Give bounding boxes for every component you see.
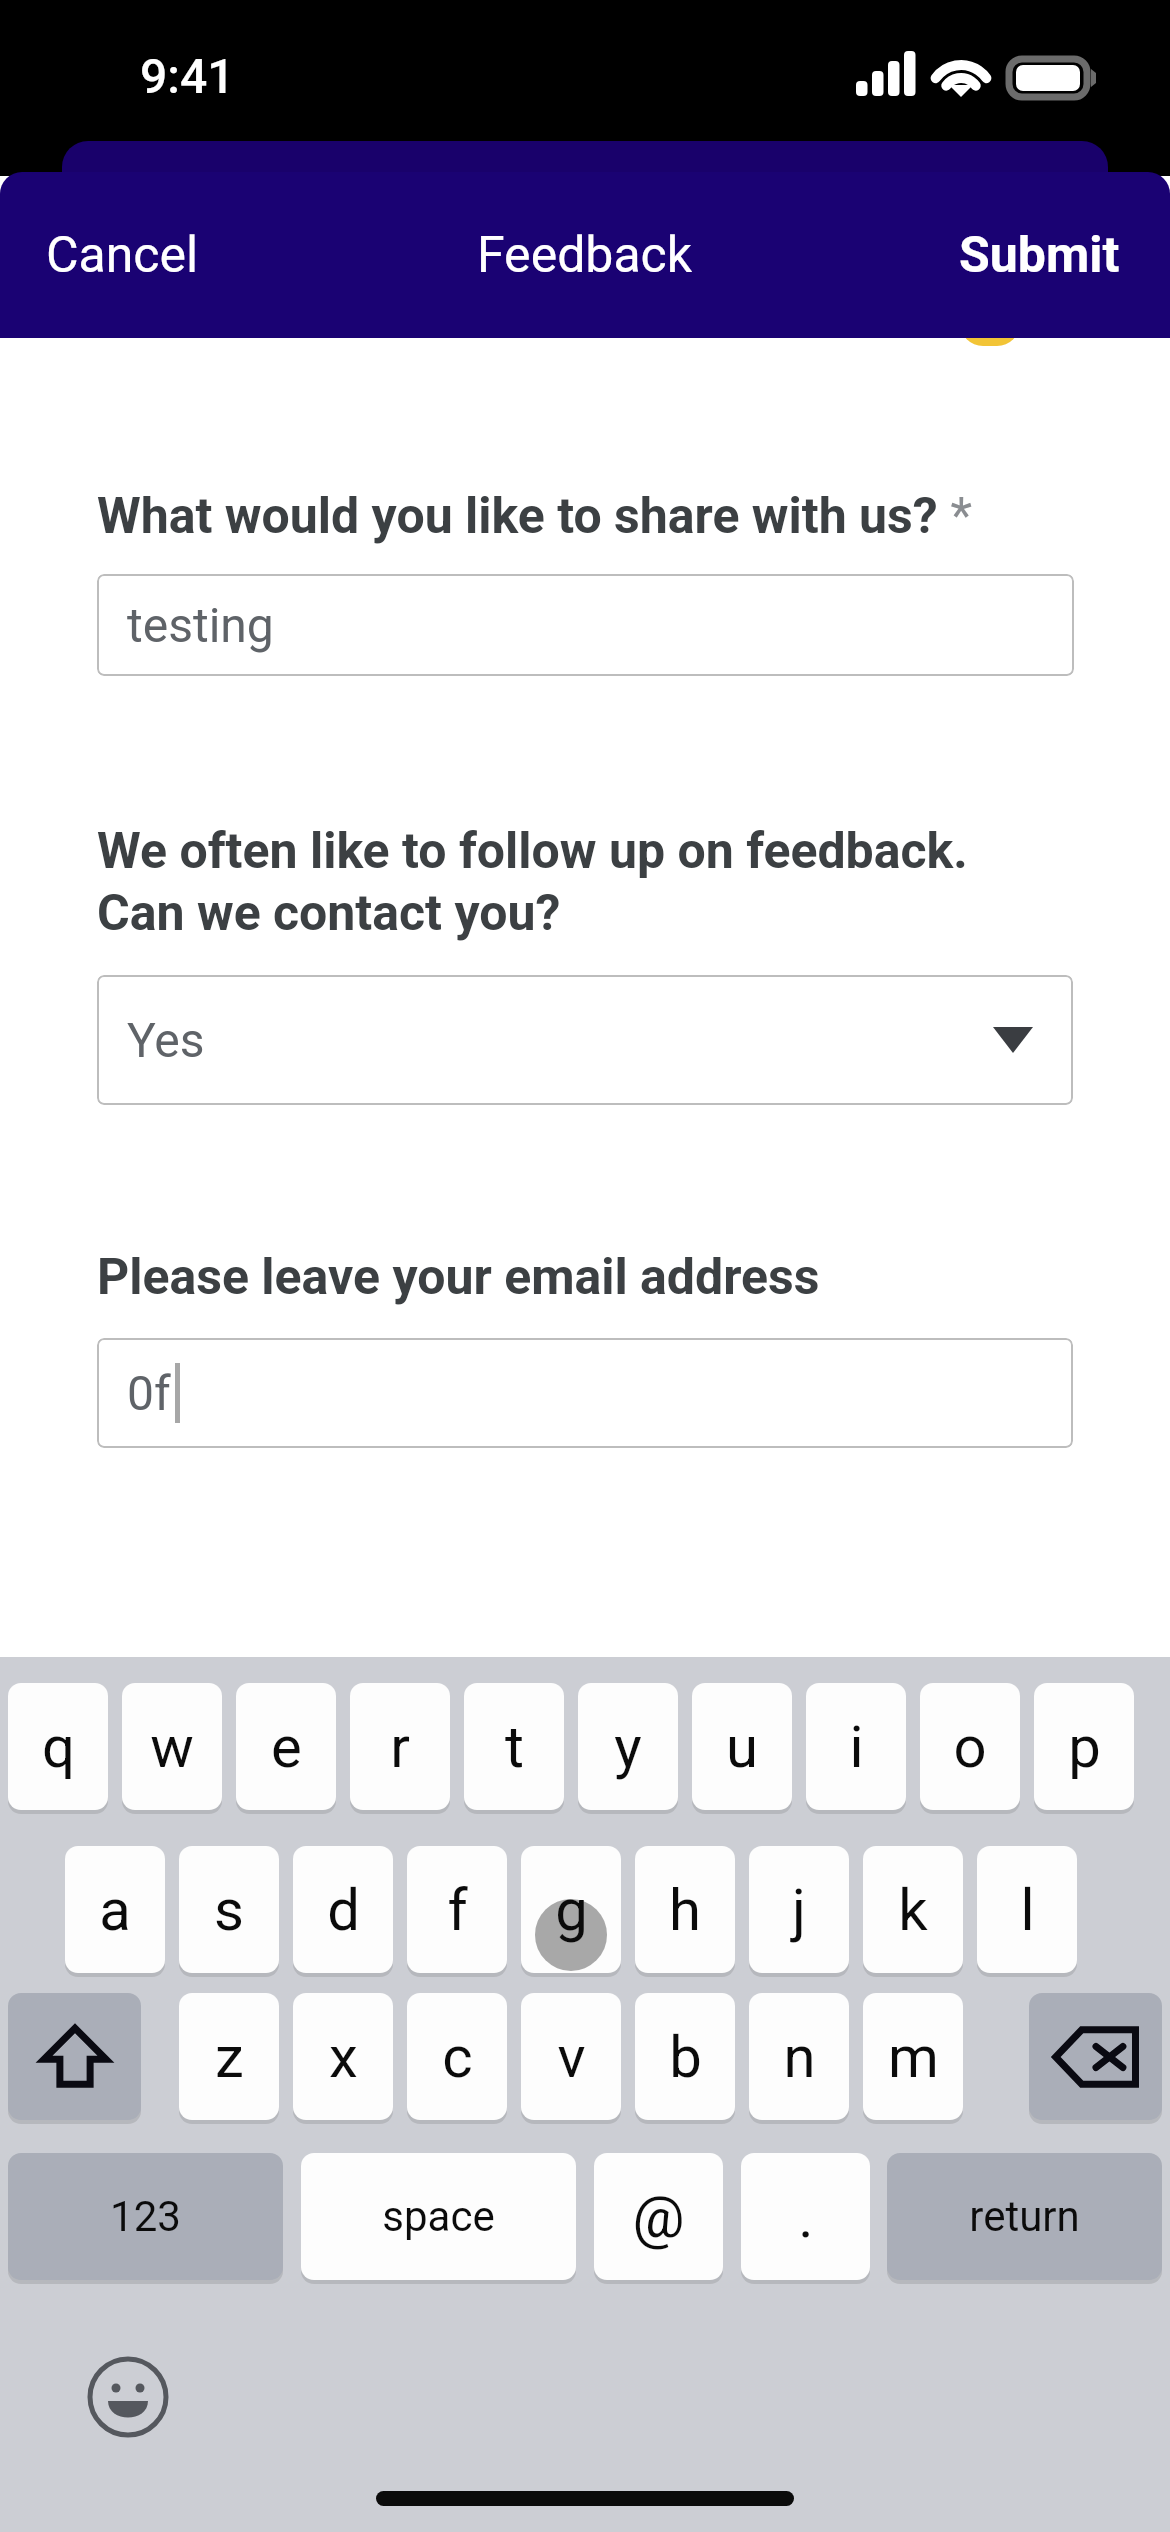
staticText: b bbox=[669, 2023, 702, 2091]
staticText: j bbox=[792, 1876, 806, 1944]
staticText: Submit bbox=[959, 226, 1120, 285]
button[interactable]: s bbox=[179, 1846, 279, 1973]
button[interactable]: o bbox=[920, 1683, 1020, 1810]
button[interactable]: 123 bbox=[8, 2153, 283, 2280]
button[interactable]: j bbox=[749, 1846, 849, 1973]
button[interactable]: Cancel bbox=[0, 204, 229, 307]
button[interactable]: u bbox=[692, 1683, 792, 1810]
staticText: i bbox=[849, 1713, 864, 1781]
staticText: a bbox=[99, 1876, 131, 1944]
staticText: @ bbox=[632, 2183, 685, 2251]
staticText: w bbox=[150, 1713, 194, 1781]
button[interactable]: space bbox=[301, 2153, 576, 2280]
staticText: What would you like to share with us? bbox=[97, 487, 938, 546]
staticText: We often like to follow up on feedback. … bbox=[97, 822, 968, 942]
staticText: d bbox=[327, 1876, 360, 1944]
button[interactable]: . bbox=[741, 2153, 870, 2280]
button[interactable]: e bbox=[236, 1683, 336, 1810]
button[interactable]: x bbox=[293, 1993, 393, 2120]
button[interactable]: Yes bbox=[97, 975, 1073, 1105]
button[interactable]: m bbox=[863, 1993, 963, 2120]
staticText: s bbox=[214, 1876, 244, 1944]
staticText: * bbox=[938, 487, 972, 546]
staticText: Cancel bbox=[46, 226, 199, 285]
button[interactable]: h bbox=[635, 1846, 735, 1973]
staticText: x bbox=[329, 2023, 358, 2091]
button[interactable]: c bbox=[407, 1993, 507, 2120]
staticText: n bbox=[783, 2023, 816, 2091]
button[interactable]: b bbox=[635, 1993, 735, 2120]
staticText: 9:41 bbox=[140, 48, 235, 104]
staticText: y bbox=[614, 1713, 642, 1781]
staticText: u bbox=[726, 1713, 758, 1781]
staticText: k bbox=[898, 1876, 928, 1944]
staticText: 0f bbox=[127, 1365, 171, 1421]
button[interactable]: 0f bbox=[97, 1338, 1073, 1448]
staticText: 123 bbox=[110, 2192, 181, 2241]
button[interactable]: testing bbox=[97, 574, 1074, 676]
button[interactable]: i bbox=[806, 1683, 906, 1810]
staticText: space bbox=[382, 2192, 495, 2241]
staticText: t bbox=[505, 1713, 524, 1781]
button[interactable]: k bbox=[863, 1846, 963, 1973]
staticText: m bbox=[888, 2023, 939, 2091]
staticText: h bbox=[669, 1876, 701, 1944]
button[interactable]: Emoji keyboard bbox=[88, 2357, 168, 2437]
staticText: r bbox=[390, 1713, 410, 1781]
button[interactable]: return bbox=[887, 2153, 1162, 2280]
staticText: v bbox=[557, 2023, 586, 2091]
staticText: testing bbox=[127, 597, 274, 653]
button[interactable]: Backspace bbox=[1029, 1993, 1162, 2120]
other: Open dropdown bbox=[993, 1027, 1033, 1053]
staticText: q bbox=[42, 1713, 75, 1781]
button[interactable]: g bbox=[521, 1846, 621, 1973]
button[interactable]: t bbox=[464, 1683, 564, 1810]
button[interactable]: l bbox=[977, 1846, 1077, 1973]
staticText: o bbox=[953, 1713, 987, 1781]
button[interactable]: y bbox=[578, 1683, 678, 1810]
staticText: c bbox=[442, 2023, 473, 2091]
button[interactable]: p bbox=[1034, 1683, 1134, 1810]
staticText: Please leave your email address bbox=[97, 1248, 820, 1307]
button[interactable]: Submit bbox=[929, 204, 1170, 307]
staticText: g bbox=[555, 1876, 588, 1944]
button[interactable]: a bbox=[65, 1846, 165, 1973]
button[interactable]: Shift bbox=[8, 1993, 141, 2120]
staticText: l bbox=[1020, 1876, 1035, 1944]
button[interactable]: f bbox=[407, 1846, 507, 1973]
button[interactable]: v bbox=[521, 1993, 621, 2120]
button[interactable]: q bbox=[8, 1683, 108, 1810]
button[interactable]: w bbox=[122, 1683, 222, 1810]
staticText: e bbox=[271, 1713, 302, 1781]
staticText: Yes bbox=[127, 1012, 205, 1068]
staticText: return bbox=[969, 2192, 1080, 2241]
button[interactable]: @ bbox=[594, 2153, 723, 2280]
button[interactable]: r bbox=[350, 1683, 450, 1810]
button[interactable]: d bbox=[293, 1846, 393, 1973]
staticText: p bbox=[1068, 1713, 1101, 1781]
staticText: Feedback bbox=[477, 226, 693, 285]
staticText: f bbox=[447, 1876, 468, 1944]
staticText: z bbox=[215, 2023, 244, 2091]
button[interactable]: z bbox=[179, 1993, 279, 2120]
staticText: . bbox=[798, 2183, 814, 2251]
button[interactable]: n bbox=[749, 1993, 849, 2120]
